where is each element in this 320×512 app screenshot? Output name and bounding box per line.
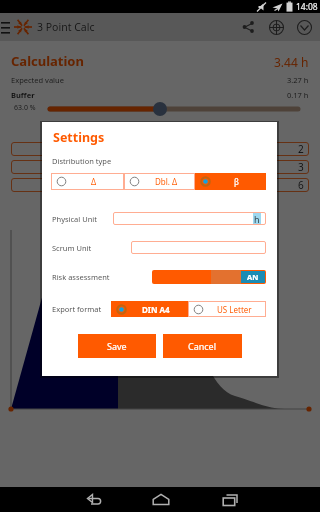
staticText: DIN A4 <box>142 304 170 315</box>
button[interactable] <box>131 241 266 254</box>
staticText: Export format <box>52 304 102 314</box>
staticText: Calculation <box>11 52 84 70</box>
button[interactable]: Share <box>234 13 262 41</box>
button[interactable]: Settings <box>290 13 318 41</box>
staticText: Settings <box>53 129 105 146</box>
staticText: 0.17 h <box>287 90 309 100</box>
button[interactable]: Cancel <box>163 334 242 358</box>
staticText: 6 <box>298 178 304 192</box>
staticText: AN <box>247 272 259 282</box>
button[interactable]: AN <box>152 270 266 284</box>
button[interactable]: 2 <box>11 142 309 156</box>
staticText: 3.27 h <box>287 75 309 85</box>
button[interactable]: Back <box>78 487 112 512</box>
staticText: Physical Unit <box>52 214 97 224</box>
button[interactable]: DIN A4 <box>111 301 188 317</box>
staticText: h <box>254 213 260 225</box>
staticText: Buffer <box>11 90 35 100</box>
staticText: Cancel <box>188 340 217 352</box>
button[interactable]: Dbl. Δ <box>124 173 195 190</box>
staticText: Δ <box>91 176 97 187</box>
button[interactable]: 3 <box>11 160 309 174</box>
button[interactable]: Help <box>262 13 290 41</box>
staticText: Save <box>107 340 127 352</box>
staticText: 3.44 h <box>274 54 309 70</box>
staticText: Expected value <box>11 75 64 85</box>
button[interactable]: Menu <box>0 16 11 38</box>
button[interactable]: Recent apps <box>213 487 247 512</box>
staticText: Scrum Unit <box>52 243 92 253</box>
button[interactable]: Save <box>78 334 156 358</box>
button[interactable]: Home <box>144 487 178 512</box>
staticText: Dbl. Δ <box>155 176 178 187</box>
button[interactable]: 6 <box>11 178 309 192</box>
staticText: Risk assessment <box>52 272 110 282</box>
staticText: Distribution type <box>52 156 112 166</box>
staticText: 2 <box>298 142 304 156</box>
staticText: β <box>234 176 239 187</box>
staticText: 3 <box>298 160 304 174</box>
staticText: 63.0 % <box>14 103 36 113</box>
button[interactable]: Δ <box>51 173 124 190</box>
button[interactable]: US Letter <box>188 301 266 317</box>
staticText: US Letter <box>217 304 252 315</box>
staticText: 3 Point Calc <box>37 20 95 34</box>
button[interactable]: h <box>113 212 266 225</box>
button[interactable]: β <box>195 173 266 190</box>
staticText: 14:08 <box>296 1 318 13</box>
